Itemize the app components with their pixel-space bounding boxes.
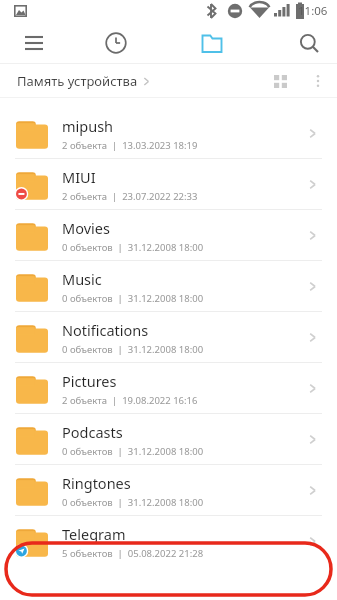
staticText: 0 объектов | 31.12.2008 18:00 [62, 445, 204, 458]
staticText: 0 объектов | 31.12.2008 18:00 [62, 241, 204, 254]
button[interactable]: More options [299, 64, 337, 98]
staticText: Movies [62, 218, 110, 238]
button[interactable]: Podcasts [0, 414, 337, 465]
staticText: 2 объекта | 23.07.2022 22:33 [62, 190, 198, 203]
button[interactable]: Pictures [0, 363, 337, 414]
button[interactable]: Movies [0, 210, 337, 261]
staticText: mipush [62, 116, 114, 136]
staticText: 2 объекта | 19.08.2022 16:16 [62, 394, 198, 407]
staticText: 2 объекта | 13.03.2023 18:19 [62, 139, 198, 152]
staticText: 0 объектов | 31.12.2008 18:00 [62, 496, 204, 509]
staticText: 0 объектов | 31.12.2008 18:00 [62, 292, 204, 305]
staticText: 11:06 [298, 3, 328, 19]
button[interactable]: Notifications [0, 312, 337, 363]
button[interactable]: Telegram [0, 516, 337, 567]
button[interactable]: Search [281, 22, 337, 64]
staticText: Ringtones [62, 473, 131, 493]
staticText: Telegram [62, 524, 126, 544]
staticText: 0 объектов | 31.12.2008 18:00 [62, 343, 204, 356]
staticText: Pictures [62, 371, 117, 391]
button[interactable]: Grid view [261, 64, 299, 98]
button[interactable]: Music [0, 261, 337, 312]
button[interactable]: MIUI [0, 159, 337, 210]
button[interactable]: mipush [0, 108, 337, 159]
staticText: 5 объектов | 05.08.2022 21:28 [62, 547, 204, 560]
staticText: Notifications [62, 320, 149, 340]
staticText: Память устройства [17, 72, 138, 90]
staticText: Music [62, 269, 102, 289]
button[interactable]: Ringtones [0, 465, 337, 516]
button[interactable]: Menu [0, 22, 68, 64]
staticText: Podcasts [62, 422, 123, 442]
button[interactable]: Память устройства [17, 72, 152, 90]
button[interactable]: Files [164, 22, 260, 64]
staticText: MIUI [62, 167, 96, 187]
button[interactable]: Recent [68, 22, 164, 64]
